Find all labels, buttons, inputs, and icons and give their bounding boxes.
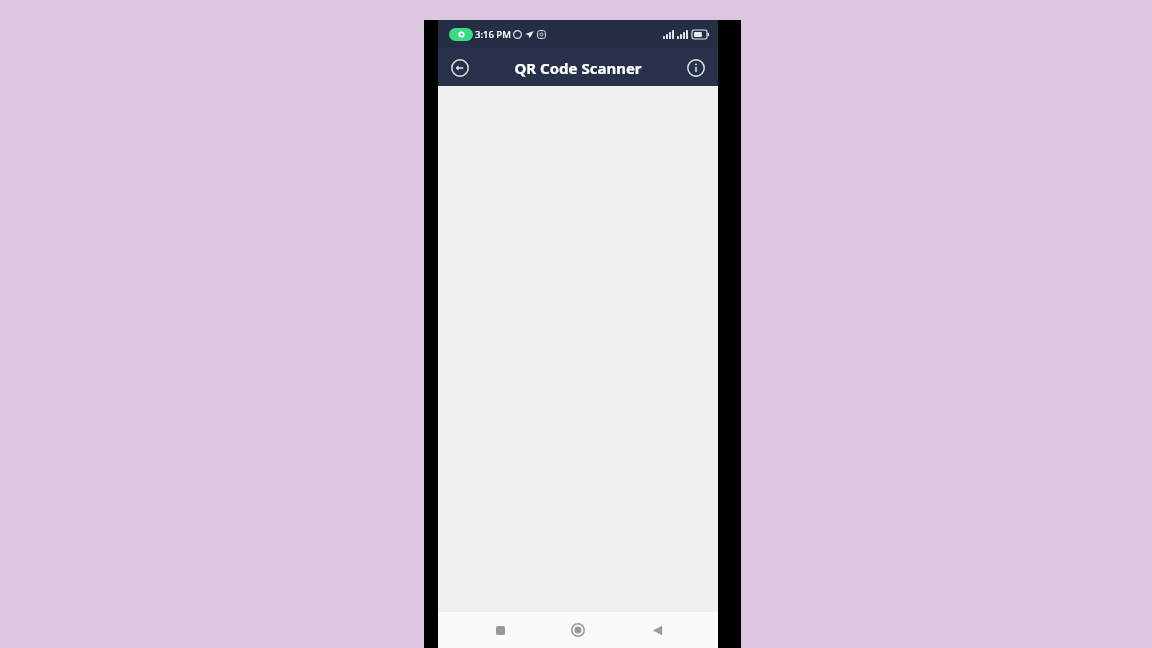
staticText: QR Code Scanner [514,58,642,78]
button[interactable]: Info [683,55,709,81]
button[interactable]: Back [447,55,473,81]
button[interactable]: Recent apps [483,613,517,647]
staticText: 3:16 PM [475,28,511,41]
button[interactable]: Home [561,613,595,647]
button[interactable]: Back [640,613,674,647]
